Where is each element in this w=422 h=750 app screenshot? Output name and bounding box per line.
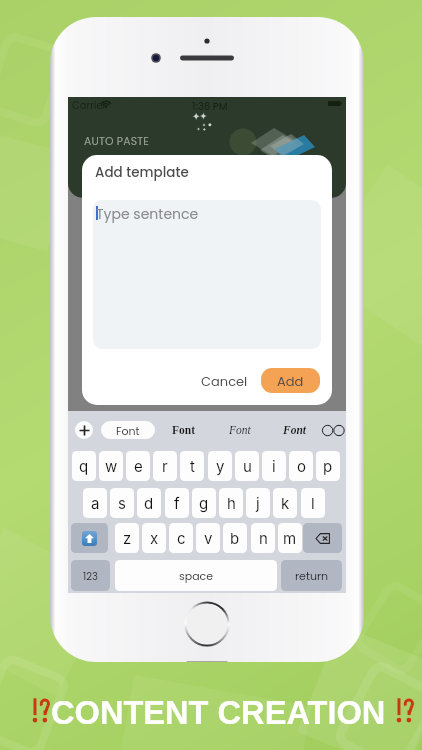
button[interactable]: Font [229,421,251,439]
button[interactable]: s [110,488,134,518]
button[interactable]: e [126,451,150,481]
staticText: Font [172,424,195,437]
button[interactable]: l [301,488,325,518]
button[interactable]: k [273,488,297,518]
staticText: Font [283,424,307,437]
staticText: v [204,529,213,547]
button[interactable]: r [153,451,177,481]
staticText: p [323,457,333,475]
button[interactable]: Add font [75,421,93,439]
staticText: g [199,494,209,512]
button[interactable]: w [99,451,123,481]
button[interactable]: d [137,488,161,518]
staticText: i [272,457,276,475]
button[interactable]: y [208,451,232,481]
staticText: t [190,457,195,475]
staticText: c [177,529,186,547]
staticText: j [256,494,260,512]
button[interactable]: Font [172,421,195,439]
button[interactable]: c [169,523,193,553]
button[interactable]: 123 [71,560,110,591]
staticText: a [91,494,100,512]
staticText: l [311,494,315,512]
staticText: f [174,494,180,512]
button[interactable]: i [262,451,286,481]
staticText: AUTO PASTE [84,134,150,149]
button[interactable]: a [83,488,107,518]
staticText: z [123,529,132,547]
staticText: y [216,457,225,475]
staticText: m [283,529,297,547]
staticText: u [243,457,252,475]
staticText: Type sentence [96,204,199,224]
button[interactable]: o [289,451,313,481]
staticText: h [227,494,236,512]
button[interactable]: v [196,523,220,553]
button[interactable]: n [251,523,275,553]
button[interactable]: More fonts [322,424,346,437]
staticText: o [297,457,306,475]
button[interactable]: u [235,451,259,481]
button[interactable]: Add [261,368,320,393]
button[interactable]: Type sentence [93,200,321,349]
button[interactable]: z [115,523,139,553]
button[interactable]: h [219,488,243,518]
button[interactable]: g [192,488,216,518]
staticText: return [295,568,329,583]
staticText: d [144,494,154,512]
button[interactable]: Backspace [303,523,342,553]
staticText: Cancel [201,372,248,390]
button[interactable]: t [180,451,204,481]
button[interactable]: q [72,451,96,481]
button[interactable]: p [316,451,340,481]
staticText: e [134,457,143,475]
button[interactable]: x [142,523,166,553]
staticText: Add [277,372,304,390]
button[interactable]: j [246,488,270,518]
staticText: Font [229,424,251,437]
button[interactable]: return [281,560,342,591]
staticText: space [179,568,214,583]
staticText: s [118,494,126,512]
button[interactable]: space [115,560,277,591]
staticText: w [105,457,118,475]
button[interactable]: Shift [71,523,108,553]
staticText: k [281,494,290,512]
staticText: q [79,457,89,475]
staticText: Font [116,423,140,438]
button[interactable]: Cancel [195,367,254,395]
staticText: 1:38 PM [192,99,228,113]
staticText: CONTENT CREATION [51,694,386,730]
button[interactable]: m [278,523,302,553]
staticText: b [230,529,240,547]
staticText: x [150,529,159,547]
staticText: r [162,457,168,475]
button[interactable]: Font [283,421,307,439]
staticText: Carrier [72,98,107,112]
staticText: Add template [95,163,189,182]
staticText: n [259,529,268,547]
button[interactable]: f [165,488,189,518]
button[interactable]: b [223,523,247,553]
staticText: 123 [83,569,98,583]
button[interactable]: Font [101,421,155,439]
